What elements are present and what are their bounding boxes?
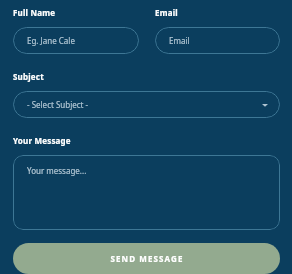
staticText: Eg. Jane Cale	[27, 35, 75, 46]
button[interactable]: Eg. Jane Cale	[13, 27, 139, 54]
staticText: Subject	[13, 71, 44, 82]
button[interactable]: Email	[155, 27, 280, 54]
other: Open subject dropdown	[260, 100, 270, 110]
button[interactable]: - Select Subject -	[13, 91, 280, 118]
staticText: Your message...	[27, 165, 87, 176]
button[interactable]: Your message...	[13, 155, 280, 230]
staticText: - Select Subject -	[27, 99, 89, 110]
staticText: Your Message	[13, 135, 71, 146]
staticText: Email	[155, 7, 178, 18]
button[interactable]: SEND MESSAGE	[13, 243, 280, 274]
staticText: Email	[169, 35, 190, 46]
staticText: SEND MESSAGE	[110, 253, 184, 264]
staticText: Full Name	[13, 7, 155, 18]
